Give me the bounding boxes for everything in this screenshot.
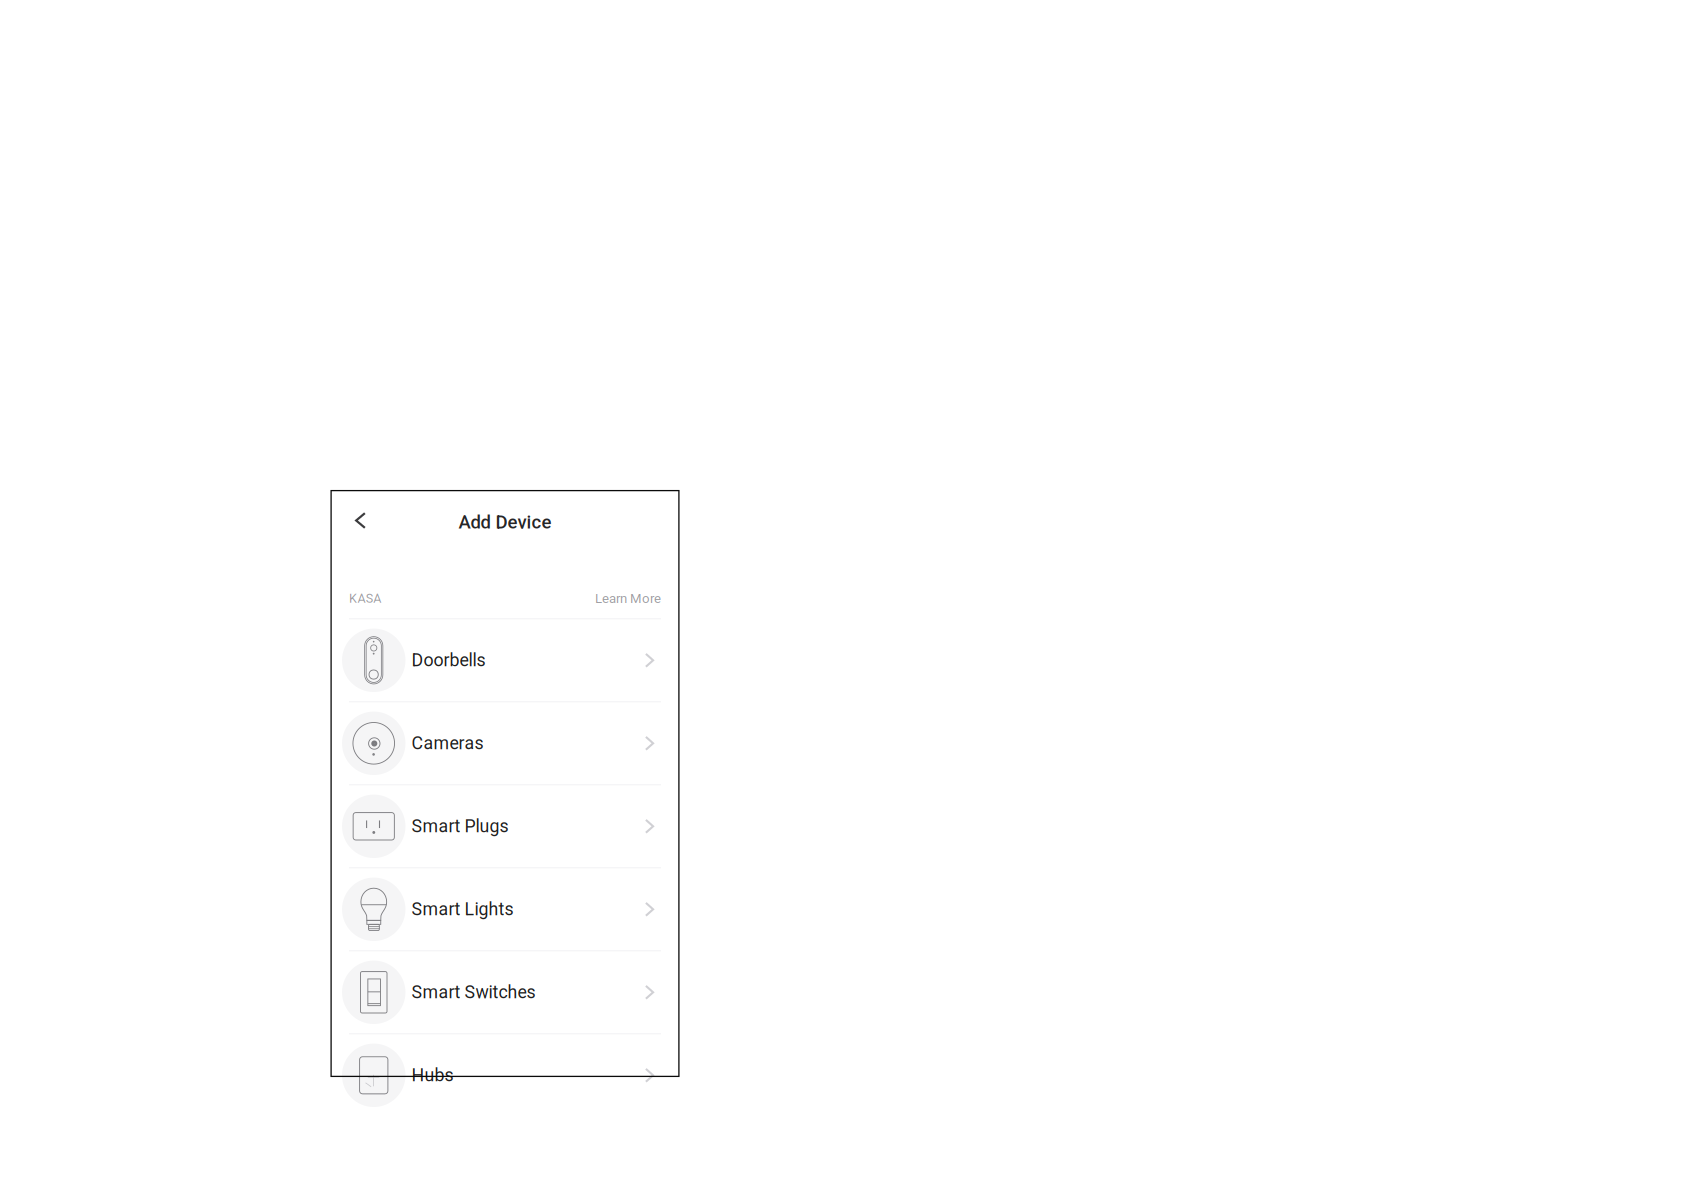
staticText: Smart Plugs <box>411 816 508 837</box>
button[interactable]: Smart Lights <box>330 868 679 950</box>
button[interactable]: Doorbells <box>330 619 679 701</box>
staticText: Smart Switches <box>411 982 535 1003</box>
button[interactable]: Smart Switches <box>330 951 679 1033</box>
staticText: Doorbells <box>411 650 485 671</box>
staticText: Cameras <box>411 733 483 754</box>
staticText: KASA <box>349 591 381 606</box>
button[interactable]: Back <box>349 500 372 540</box>
button[interactable]: Smart Plugs <box>330 785 679 867</box>
staticText: Learn More <box>595 591 661 606</box>
staticText: Add Device <box>458 511 551 533</box>
staticText: Smart Lights <box>411 899 513 920</box>
button[interactable]: Cameras <box>330 702 679 784</box>
button[interactable]: Hubs <box>330 1034 679 1116</box>
staticText: Hubs <box>411 1065 453 1086</box>
button[interactable]: Learn More <box>571 591 661 605</box>
